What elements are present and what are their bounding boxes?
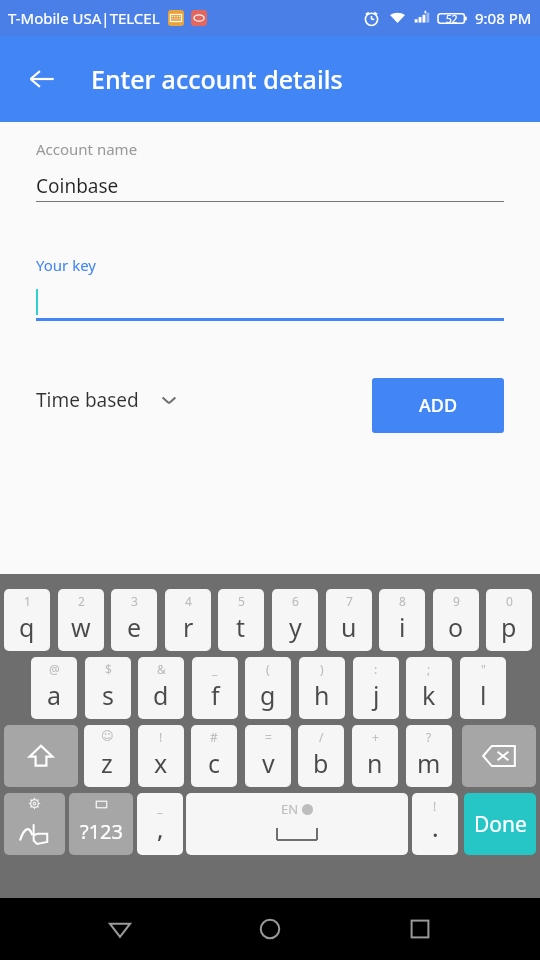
staticText: _ [212, 661, 218, 677]
button[interactable]: ADD [372, 378, 504, 433]
button[interactable]: Space [186, 793, 408, 855]
staticText: , [157, 812, 164, 845]
button[interactable]: Keyboard settings [4, 793, 65, 855]
staticText: 9 [453, 593, 460, 609]
button[interactable]: 2 [58, 589, 104, 651]
staticText: 2 [78, 593, 85, 609]
staticText: 52 [446, 12, 458, 26]
staticText: ) [320, 661, 324, 677]
button[interactable]: 8 [379, 589, 425, 651]
staticText: ! [433, 798, 437, 814]
button[interactable]: Coinbase [36, 168, 504, 204]
staticText: q [19, 610, 35, 644]
button[interactable]: ! [138, 725, 184, 787]
button[interactable]: @ [31, 657, 77, 719]
staticText: p [501, 610, 517, 644]
button[interactable]: Home [240, 899, 300, 959]
staticText: j [373, 678, 380, 712]
button[interactable]: ; [406, 657, 452, 719]
staticText: _ [157, 799, 163, 815]
staticText: ☺ [101, 729, 114, 743]
staticText: + [372, 729, 379, 745]
staticText: ? [426, 729, 432, 745]
staticText: EN [281, 800, 299, 818]
staticText: . [432, 811, 439, 844]
staticText: w [71, 610, 91, 644]
button[interactable]: 9 [433, 589, 479, 651]
staticText: 6 [292, 593, 299, 609]
staticText: k [422, 678, 436, 712]
staticText: = [265, 729, 272, 745]
staticText: r [183, 610, 194, 644]
staticText: f [211, 678, 220, 712]
button[interactable]: ☺ [84, 725, 130, 787]
staticText: ?123 [80, 818, 123, 845]
staticText: @ [49, 661, 60, 677]
button[interactable]: 5 [218, 589, 264, 651]
button[interactable]: ) [299, 657, 345, 719]
staticText: 8 [399, 593, 406, 609]
staticText: & [157, 661, 166, 677]
staticText: i [399, 610, 406, 644]
staticText: d [153, 678, 169, 712]
staticText: h [314, 678, 330, 712]
button[interactable]: _ [192, 657, 238, 719]
staticText: T-Mobile USA|TELCEL [8, 8, 160, 28]
staticText: l [480, 678, 487, 712]
button[interactable]: + [352, 725, 398, 787]
button[interactable]: 6 [272, 589, 318, 651]
button[interactable]: : [353, 657, 399, 719]
staticText: Coinbase [36, 173, 119, 199]
button[interactable]: Period [412, 793, 458, 855]
staticText: b [313, 746, 329, 780]
staticText: x [154, 746, 168, 780]
staticText: 0 [506, 593, 513, 609]
button[interactable]: Shift [4, 725, 78, 787]
staticText: s [102, 678, 114, 712]
staticText: m [417, 746, 441, 780]
button[interactable]: $ [85, 657, 131, 719]
staticText: a [47, 678, 62, 712]
staticText: 4 [185, 593, 192, 609]
staticText: u [341, 610, 357, 644]
button[interactable]: Done [464, 793, 536, 855]
staticText: Your key [36, 255, 97, 275]
staticText: ! [159, 729, 163, 745]
staticText: y [289, 610, 302, 644]
staticText: g [260, 678, 276, 712]
button[interactable]: " [460, 657, 506, 719]
button[interactable]: ( [245, 657, 291, 719]
button[interactable]: / [298, 725, 344, 787]
staticText: 3 [131, 593, 138, 609]
button[interactable]: 4 [165, 589, 211, 651]
button[interactable]: Back [90, 899, 150, 959]
staticText: : [374, 661, 378, 677]
staticText: / [319, 729, 324, 745]
staticText: 5 [238, 593, 245, 609]
staticText: o [448, 610, 464, 644]
button[interactable]: Time based [30, 376, 185, 424]
button[interactable]: Recent apps [390, 899, 450, 959]
staticText: Done [474, 810, 527, 839]
button[interactable]: # [191, 725, 237, 787]
button[interactable]: Comma [137, 793, 183, 855]
staticText: ADD [419, 393, 458, 418]
button[interactable]: Backspace [462, 725, 536, 787]
staticText: Time based [36, 387, 139, 413]
button[interactable]: & [138, 657, 184, 719]
button[interactable]: Symbols [69, 793, 133, 855]
staticText: 1 [24, 593, 31, 609]
button[interactable]: 7 [326, 589, 372, 651]
button[interactable]: 3 [111, 589, 157, 651]
staticText: e [127, 610, 142, 644]
button[interactable]: ? [406, 725, 452, 787]
button[interactable]: 1 [4, 589, 50, 651]
staticText: t [236, 610, 246, 644]
button[interactable]: = [245, 725, 291, 787]
button[interactable]: 0 [486, 589, 532, 651]
staticText: Enter account details [91, 62, 343, 96]
staticText: Account name [36, 139, 138, 159]
button[interactable]: Back [18, 55, 66, 103]
staticText: 9:08 PM [475, 8, 532, 28]
